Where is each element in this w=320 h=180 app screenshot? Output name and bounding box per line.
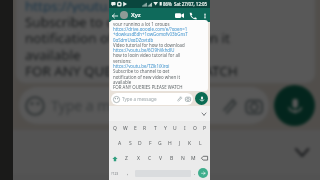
staticText: Type a message bbox=[122, 96, 157, 102]
button[interactable]: R bbox=[103, 174, 134, 180]
button[interactable]: C bbox=[144, 151, 155, 166]
button[interactable]: More options bbox=[199, 10, 210, 21]
staticText: V bbox=[159, 155, 163, 162]
staticText: D bbox=[138, 140, 142, 147]
button[interactable]: U bbox=[196, 174, 227, 180]
staticText: C bbox=[148, 155, 152, 162]
staticText: G bbox=[158, 140, 162, 147]
button[interactable]: N bbox=[177, 151, 188, 166]
other: Camera bbox=[245, 97, 263, 115]
button[interactable]: Shift bbox=[109, 151, 120, 166]
staticText: available bbox=[25, 46, 81, 62]
button[interactable]: B bbox=[166, 151, 177, 166]
staticText: E bbox=[134, 125, 137, 132]
button[interactable]: Type a message bbox=[111, 93, 193, 105]
button[interactable]: Y bbox=[160, 121, 170, 136]
staticText: J bbox=[179, 140, 181, 147]
staticText: Subscribe to channel to get bbox=[25, 13, 197, 29]
button[interactable]: . bbox=[191, 166, 198, 180]
button[interactable]: V bbox=[155, 151, 166, 166]
staticText: FOR ANY QUERIES PLEASE WATCH bbox=[25, 62, 238, 78]
other: Hide keyboard bbox=[201, 111, 207, 117]
button[interactable]: Send bbox=[198, 168, 208, 178]
staticText: https://drive.google.com/e/?open=1 bbox=[113, 26, 188, 31]
button[interactable]: Backspace bbox=[199, 151, 210, 166]
staticText: 0qSdmUxqDZpytdb bbox=[113, 37, 154, 42]
button[interactable]: X bbox=[132, 151, 144, 166]
button[interactable]: Z bbox=[120, 151, 132, 166]
staticText: FOR ANY QUERIES PLEASE WATCH bbox=[113, 84, 183, 89]
staticText: how to login video tutorial for all bbox=[113, 52, 181, 57]
button[interactable]: W bbox=[120, 121, 130, 136]
staticText: M bbox=[191, 155, 196, 162]
staticText: your running a lot 1 groups bbox=[113, 21, 170, 26]
staticText: Type a message bbox=[51, 96, 157, 115]
button[interactable]: T bbox=[150, 121, 160, 136]
other: Attach bbox=[176, 96, 182, 102]
staticText: P bbox=[203, 125, 207, 132]
staticText: L bbox=[199, 140, 202, 147]
button[interactable]: U bbox=[170, 121, 180, 136]
button[interactable]: Video call bbox=[173, 9, 186, 22]
staticText: ?123 bbox=[111, 171, 119, 176]
button[interactable]: ?123 bbox=[109, 166, 121, 180]
staticText: K bbox=[188, 140, 192, 147]
button[interactable]: Call bbox=[186, 9, 199, 22]
staticText: T bbox=[154, 125, 157, 132]
staticText: I bbox=[184, 125, 186, 132]
button[interactable]: R bbox=[140, 121, 150, 136]
button[interactable]: Voice message bbox=[195, 92, 208, 105]
staticText: B bbox=[170, 155, 174, 162]
button[interactable]: M bbox=[188, 151, 199, 166]
button[interactable]: S bbox=[125, 136, 135, 151]
button[interactable]: Type a message bbox=[19, 87, 269, 124]
staticText: 86% Sat 27/07, 12:05 bbox=[163, 1, 208, 7]
other: Hide keyboard bbox=[293, 143, 311, 161]
staticText: O bbox=[193, 125, 197, 132]
button[interactable]: Q bbox=[109, 121, 120, 136]
button[interactable]: T bbox=[134, 174, 165, 180]
other: Camera bbox=[185, 96, 191, 102]
button[interactable]: Voice message bbox=[274, 85, 315, 126]
staticText: Y bbox=[164, 125, 167, 132]
button[interactable]: P bbox=[200, 121, 210, 136]
staticText: versions: bbox=[113, 58, 132, 63]
staticText: R bbox=[143, 125, 147, 132]
button[interactable]: O bbox=[190, 121, 200, 136]
button[interactable]: K bbox=[185, 136, 195, 151]
staticText: U bbox=[173, 125, 177, 132]
button[interactable]: Y bbox=[165, 174, 196, 180]
button[interactable]: , bbox=[121, 166, 135, 180]
staticText: , bbox=[127, 170, 129, 176]
button[interactable]: G bbox=[155, 136, 165, 151]
staticText: https://youtu.be/TZlk1jXjrgj bbox=[113, 63, 170, 68]
staticText: N bbox=[181, 155, 185, 162]
button[interactable]: I bbox=[180, 121, 190, 136]
button[interactable]: D bbox=[135, 136, 145, 151]
staticText: +dowkusdEdh+1gwGomgfv03bGnsT bbox=[113, 31, 188, 36]
button[interactable]: J bbox=[175, 136, 185, 151]
button[interactable]: F bbox=[145, 136, 155, 151]
staticText: Z bbox=[125, 155, 128, 162]
button[interactable]: A bbox=[114, 136, 125, 151]
other: Attach bbox=[219, 97, 237, 115]
button[interactable]: H bbox=[165, 136, 175, 151]
staticText: H bbox=[168, 140, 172, 147]
staticText: S bbox=[129, 140, 132, 147]
staticText: available bbox=[113, 79, 132, 84]
staticText: . bbox=[194, 170, 196, 176]
staticText: Subscribe to channel to get bbox=[113, 68, 170, 73]
button[interactable]: Back bbox=[109, 10, 120, 21]
staticText: F bbox=[149, 140, 152, 147]
button[interactable]: L bbox=[195, 136, 205, 151]
button[interactable]: E bbox=[130, 121, 140, 136]
staticText: https://youtu.be/6Cl9hVkhdlU bbox=[113, 47, 175, 52]
staticText: notification of new video when it bbox=[113, 74, 181, 79]
